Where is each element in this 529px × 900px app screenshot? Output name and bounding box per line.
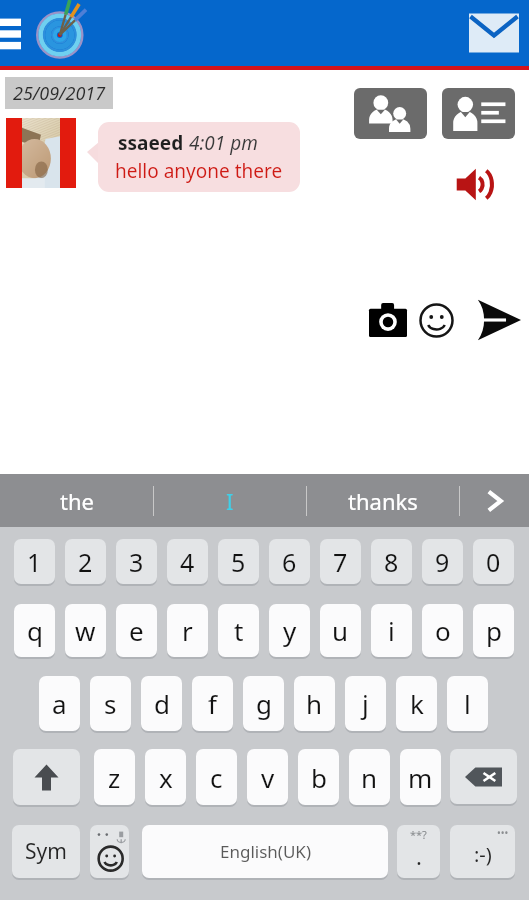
staticText: thanks <box>348 486 418 516</box>
staticText: hello anyone there <box>115 158 283 184</box>
button[interactable]: 3 <box>116 539 157 584</box>
staticText: f <box>208 686 217 721</box>
button[interactable]: 9 <box>422 539 463 584</box>
staticText: :-) <box>474 841 492 868</box>
staticText: b <box>311 760 327 795</box>
staticText: 1 <box>27 545 42 579</box>
staticText: o <box>435 613 451 648</box>
staticText: **? <box>410 827 427 842</box>
button[interactable]: o <box>422 604 463 657</box>
staticText: u <box>332 613 349 648</box>
staticText: 4 <box>180 545 195 579</box>
button[interactable]: w <box>65 604 106 657</box>
button[interactable]: n <box>349 749 390 805</box>
button[interactable]: Group members <box>354 88 427 139</box>
staticText: Sym <box>25 837 67 866</box>
button[interactable]: 5 <box>218 539 259 584</box>
button[interactable]: x <box>145 749 186 805</box>
staticText: 9 <box>435 545 450 579</box>
staticText: 7 <box>333 545 348 579</box>
button[interactable]: 8 <box>371 539 412 584</box>
button[interactable]: Emoji and voice input <box>90 825 129 878</box>
staticText: a <box>52 686 67 721</box>
button[interactable]: English(UK) <box>142 825 388 878</box>
staticText: 4:01 pm <box>189 130 258 156</box>
button[interactable]: **? <box>397 825 440 878</box>
staticText: n <box>361 760 378 795</box>
button[interactable]: r <box>167 604 208 657</box>
button[interactable]: p <box>473 604 514 657</box>
staticText: 3 <box>129 545 144 579</box>
button[interactable]: c <box>196 749 237 805</box>
staticText: ssaeed <box>118 130 189 156</box>
button[interactable]: v <box>247 749 288 805</box>
button[interactable]: Shift <box>13 749 80 805</box>
button[interactable]: Messages <box>464 8 524 58</box>
staticText: s <box>104 686 117 721</box>
button[interactable]: Speaker <box>456 168 492 201</box>
button[interactable]: I <box>154 474 306 527</box>
button[interactable]: Send <box>477 299 521 341</box>
button[interactable]: Backspace <box>450 749 517 804</box>
button[interactable]: ssaeed <box>98 122 300 192</box>
button[interactable]: m <box>400 749 441 805</box>
button[interactable]: g <box>243 676 284 731</box>
staticText: j <box>362 686 369 721</box>
button[interactable]: Contact details <box>442 88 515 139</box>
button[interactable]: q <box>14 604 55 657</box>
staticText: x <box>159 760 173 795</box>
staticText: 6 <box>282 545 297 579</box>
staticText: 0 <box>486 545 501 579</box>
staticText: English(UK) <box>220 840 311 863</box>
staticText: r <box>182 613 193 648</box>
button[interactable]: thanks <box>307 474 459 527</box>
staticText: e <box>129 613 144 648</box>
staticText: v <box>261 760 275 795</box>
staticText: . <box>416 841 422 871</box>
button[interactable]: y <box>269 604 310 657</box>
button[interactable]: 2 <box>65 539 106 584</box>
staticText: p <box>486 613 502 648</box>
button[interactable]: 7 <box>320 539 361 584</box>
button[interactable]: 0 <box>473 539 514 584</box>
button[interactable]: h <box>294 676 335 731</box>
button[interactable]: the <box>0 474 153 527</box>
staticText: 25/09/2017 <box>13 81 106 106</box>
button[interactable]: a <box>39 676 80 731</box>
staticText: I <box>226 486 234 516</box>
button[interactable]: t <box>218 604 259 657</box>
button[interactable]: e <box>116 604 157 657</box>
staticText: h <box>306 686 323 721</box>
button[interactable]: f <box>192 676 233 731</box>
button[interactable]: k <box>396 676 437 731</box>
button[interactable]: ••• <box>450 825 515 878</box>
button[interactable]: Menu <box>0 10 22 58</box>
button[interactable]: 4 <box>167 539 208 584</box>
button[interactable]: i <box>371 604 412 657</box>
staticText: c <box>210 760 223 795</box>
staticText: w <box>75 613 96 648</box>
button[interactable]: b <box>298 749 339 805</box>
staticText: ••• <box>497 826 509 840</box>
staticText: y <box>283 613 297 648</box>
staticText: d <box>154 686 170 721</box>
staticText: 8 <box>384 545 399 579</box>
button[interactable]: Sym <box>12 825 80 878</box>
button[interactable]: z <box>94 749 135 805</box>
staticText: 2 <box>78 545 93 579</box>
button[interactable]: d <box>141 676 182 731</box>
staticText: l <box>464 686 471 721</box>
button[interactable]: Camera <box>369 303 407 337</box>
button[interactable]: Emoji <box>418 302 455 339</box>
staticText: t <box>234 613 244 648</box>
button[interactable]: l <box>447 676 488 731</box>
button[interactable]: 6 <box>269 539 310 584</box>
button[interactable]: u <box>320 604 361 657</box>
staticText: z <box>108 760 121 795</box>
button[interactable]: s <box>90 676 131 731</box>
button[interactable]: 1 <box>14 539 55 584</box>
button[interactable]: j <box>345 676 386 731</box>
staticText: g <box>256 686 272 721</box>
button[interactable]: More suggestions <box>460 474 529 527</box>
staticText: k <box>410 686 424 721</box>
